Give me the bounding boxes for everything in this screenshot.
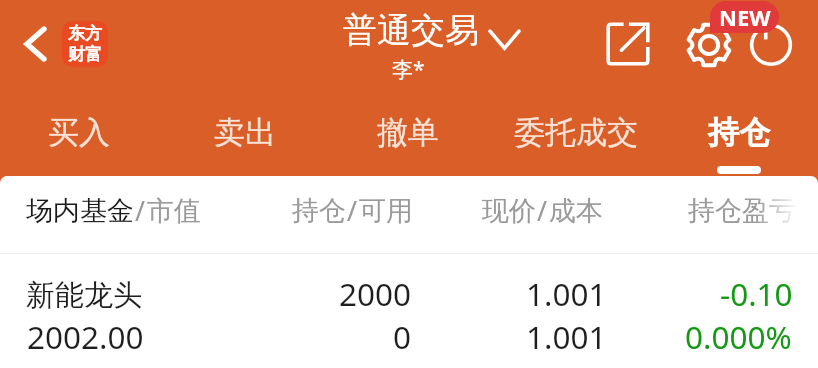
staticText: 1.001	[526, 315, 607, 358]
button[interactable]: 买入	[0, 92, 161, 176]
staticText: 李*	[392, 55, 425, 84]
button[interactable]: 普通交易	[343, 6, 523, 54]
staticText: 2002.00	[27, 315, 144, 358]
staticText: 撤单	[377, 113, 439, 152]
staticText: 2000	[339, 272, 412, 315]
staticText: /	[135, 192, 146, 229]
button[interactable]: New	[710, 1, 779, 33]
staticText: 市值	[147, 194, 201, 228]
button[interactable]: Open external link	[597, 13, 659, 75]
staticText: /	[347, 192, 358, 229]
button[interactable]: 持仓	[657, 92, 818, 176]
staticText: 持仓	[292, 194, 346, 228]
staticText: 财富	[68, 44, 102, 65]
button[interactable]: 新能龙头	[0, 254, 818, 368]
staticText: 普通交易	[343, 9, 479, 52]
staticText: 卖出	[214, 113, 276, 152]
staticText: 1.001	[526, 272, 607, 315]
staticText: /	[537, 192, 548, 229]
staticText: 可用	[359, 194, 413, 228]
staticText: 成本	[549, 194, 603, 228]
button[interactable]: Settings	[679, 15, 739, 75]
button[interactable]: East Money	[62, 21, 108, 67]
button[interactable]: 卖出	[163, 92, 327, 176]
staticText: 持仓	[708, 113, 770, 152]
staticText: NEW	[719, 2, 771, 32]
staticText: 新能龙头	[26, 277, 142, 314]
button[interactable]: Refresh	[741, 12, 801, 72]
staticText: 东方	[68, 23, 102, 44]
button[interactable]: 委托成交	[494, 92, 658, 176]
staticText: 买入	[48, 113, 110, 152]
staticText: 现价	[482, 194, 536, 228]
staticText: 场内基金	[26, 194, 134, 228]
staticText: 持仓盈亏	[688, 194, 796, 228]
staticText: 委托成交	[514, 113, 638, 152]
button[interactable]: Back	[7, 16, 63, 72]
staticText: 0.000%	[685, 315, 792, 358]
staticText: 0	[393, 315, 412, 358]
button[interactable]: 撤单	[326, 92, 490, 176]
staticText: -0.10	[720, 272, 793, 315]
